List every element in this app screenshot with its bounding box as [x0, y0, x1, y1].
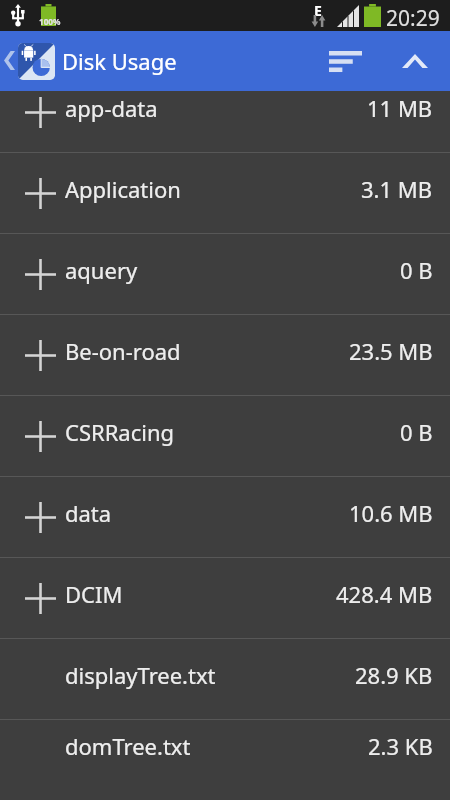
staticText: 11 MB	[367, 93, 433, 123]
staticText: data	[65, 498, 112, 528]
button[interactable]: Be-on-road	[0, 315, 450, 396]
button[interactable]: data	[0, 477, 450, 558]
button[interactable]: domTree.txt	[0, 720, 450, 781]
button[interactable]: Sort	[311, 31, 377, 91]
staticText: 28.9 KB	[355, 660, 433, 690]
button[interactable]: app-data	[0, 91, 450, 153]
button[interactable]: DCIM	[0, 558, 450, 639]
staticText: 20:29	[386, 4, 440, 33]
staticText: Application	[65, 174, 181, 204]
staticText: E	[314, 1, 322, 20]
staticText: 2.3 KB	[368, 731, 433, 761]
staticText: Disk Usage	[62, 46, 177, 76]
staticText: DCIM	[65, 579, 123, 609]
button[interactable]: displayTree.txt	[0, 639, 450, 720]
staticText: 3.1 MB	[361, 174, 433, 204]
staticText: 0 B	[400, 417, 433, 447]
button[interactable]: aquery	[0, 234, 450, 315]
staticText: CSRRacing	[65, 417, 175, 447]
button[interactable]: Application	[0, 153, 450, 234]
staticText: app-data	[65, 93, 158, 123]
staticText: displayTree.txt	[65, 660, 216, 690]
staticText: aquery	[65, 255, 138, 285]
staticText: Be-on-road	[65, 336, 181, 366]
staticText: 10.6 MB	[349, 498, 433, 528]
button[interactable]: CSRRacing	[0, 396, 450, 477]
staticText: 100%	[39, 16, 61, 27]
button[interactable]: Collapse all	[382, 31, 448, 91]
button[interactable]: Navigate up	[0, 31, 58, 91]
staticText: 428.4 MB	[336, 579, 433, 609]
staticText: 0 B	[400, 255, 433, 285]
staticText: domTree.txt	[65, 731, 191, 761]
staticText: 23.5 MB	[349, 336, 433, 366]
